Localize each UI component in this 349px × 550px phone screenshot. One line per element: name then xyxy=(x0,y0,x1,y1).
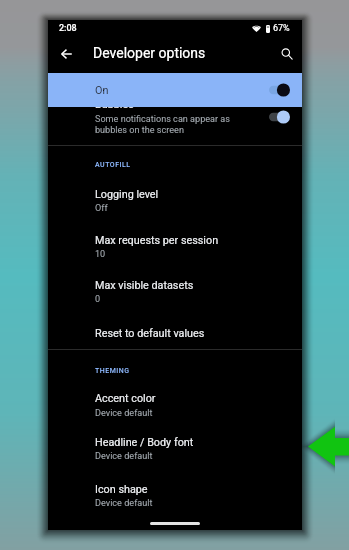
staticText: Some notifications can appear as xyxy=(95,114,231,125)
button[interactable] xyxy=(48,177,302,217)
staticText: Logging level xyxy=(95,188,159,201)
button[interactable]: Search xyxy=(275,42,299,66)
button[interactable] xyxy=(48,472,302,512)
staticText: On xyxy=(95,84,109,97)
staticText: bubbles on the screen xyxy=(95,125,184,136)
staticText: Device default xyxy=(95,408,153,419)
button[interactable] xyxy=(48,268,302,308)
staticText: Developer options xyxy=(93,45,206,61)
staticText: Device default xyxy=(95,498,153,509)
staticText: Max visible datasets xyxy=(95,279,194,292)
button[interactable] xyxy=(48,223,302,263)
staticText: Bubbles xyxy=(95,98,134,111)
staticText: Device default xyxy=(95,451,153,462)
staticText: 0 xyxy=(95,294,101,305)
staticText: Icon shape xyxy=(95,483,148,496)
staticText: AUTOFILL xyxy=(95,161,131,169)
button[interactable] xyxy=(48,425,302,465)
staticText: Accent color xyxy=(95,392,156,405)
staticText: Headline / Body font xyxy=(95,436,194,449)
staticText: 10 xyxy=(95,249,106,260)
staticText: 67% xyxy=(273,23,290,34)
staticText: THEMING xyxy=(95,367,130,375)
staticText: Off xyxy=(95,203,108,214)
staticText: Max requests per session xyxy=(95,234,219,247)
staticText: 2:08 xyxy=(59,23,77,34)
button[interactable] xyxy=(48,316,302,346)
button[interactable]: On xyxy=(48,73,302,107)
button[interactable] xyxy=(48,94,302,138)
staticText: Reset to default values xyxy=(95,327,205,340)
button[interactable]: Back xyxy=(54,42,78,66)
button[interactable] xyxy=(48,381,302,421)
